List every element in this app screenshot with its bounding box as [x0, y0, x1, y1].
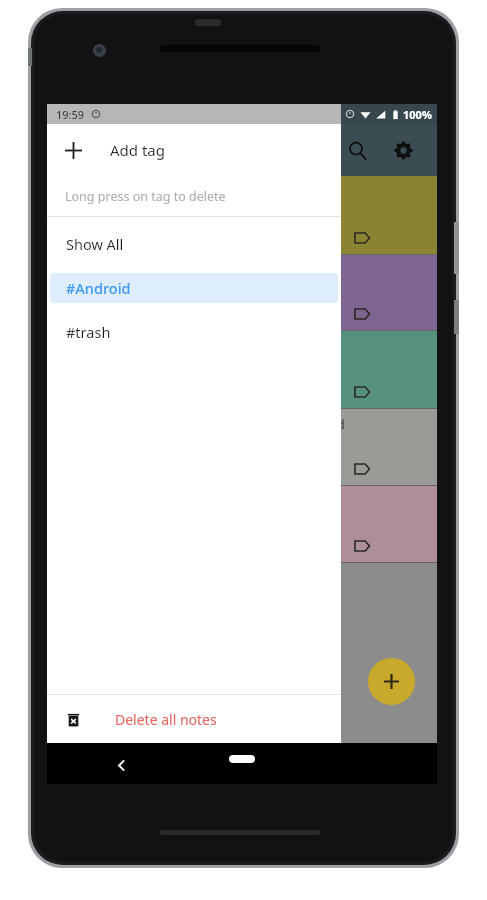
- staticText: Long press on tag to delete: [65, 188, 226, 205]
- staticText: Add tag: [110, 140, 165, 160]
- button[interactable]: Search: [337, 130, 377, 170]
- staticText: dDev: [297, 261, 325, 276]
- staticText: #Android: [66, 278, 131, 298]
- button[interactable]: Home: [229, 755, 255, 763]
- button[interactable]: Add tag: [47, 124, 341, 176]
- staticText: Show All: [66, 234, 124, 254]
- button[interactable]: dDev: [47, 255, 437, 330]
- button[interactable]: android: [47, 409, 437, 485]
- staticText: 100%: [403, 107, 432, 122]
- staticText: 19:59: [56, 107, 85, 122]
- button[interactable]: #Android: [50, 273, 338, 303]
- button[interactable]: Add note: [368, 658, 415, 705]
- button[interactable]: Back: [107, 751, 135, 779]
- button[interactable]: Settings: [383, 130, 423, 170]
- staticText: Delete all notes: [115, 710, 217, 729]
- button[interactable]: ture: [47, 331, 437, 408]
- staticText: android: [297, 415, 345, 433]
- button[interactable]: Show All: [50, 229, 338, 259]
- button[interactable]: #trash: [50, 317, 338, 347]
- button[interactable]: Delete all notes: [47, 695, 341, 743]
- button[interactable]: Android: [47, 486, 437, 562]
- button[interactable]: olate: [47, 176, 437, 254]
- staticText: #trash: [66, 322, 111, 342]
